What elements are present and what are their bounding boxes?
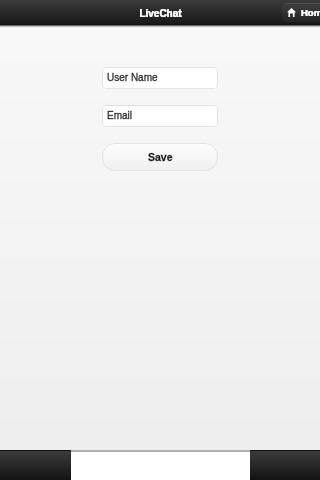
staticText: User Name bbox=[107, 72, 158, 83]
staticText: Save bbox=[148, 151, 173, 163]
staticText: Email bbox=[107, 110, 133, 121]
staticText: LiveChat bbox=[139, 8, 182, 19]
button[interactable]: Save bbox=[102, 143, 218, 171]
staticText: Save bbox=[148, 151, 173, 163]
staticText: Email bbox=[107, 110, 133, 121]
button[interactable]: Email bbox=[102, 105, 218, 127]
staticText: LiveChat bbox=[139, 8, 182, 19]
button[interactable]: User Name bbox=[102, 67, 218, 89]
other: Home bbox=[287, 8, 296, 17]
staticText: Home bbox=[301, 7, 320, 18]
button[interactable]: Home bbox=[282, 3, 320, 22]
staticText: User Name bbox=[107, 72, 158, 83]
staticText: Home bbox=[301, 7, 320, 18]
